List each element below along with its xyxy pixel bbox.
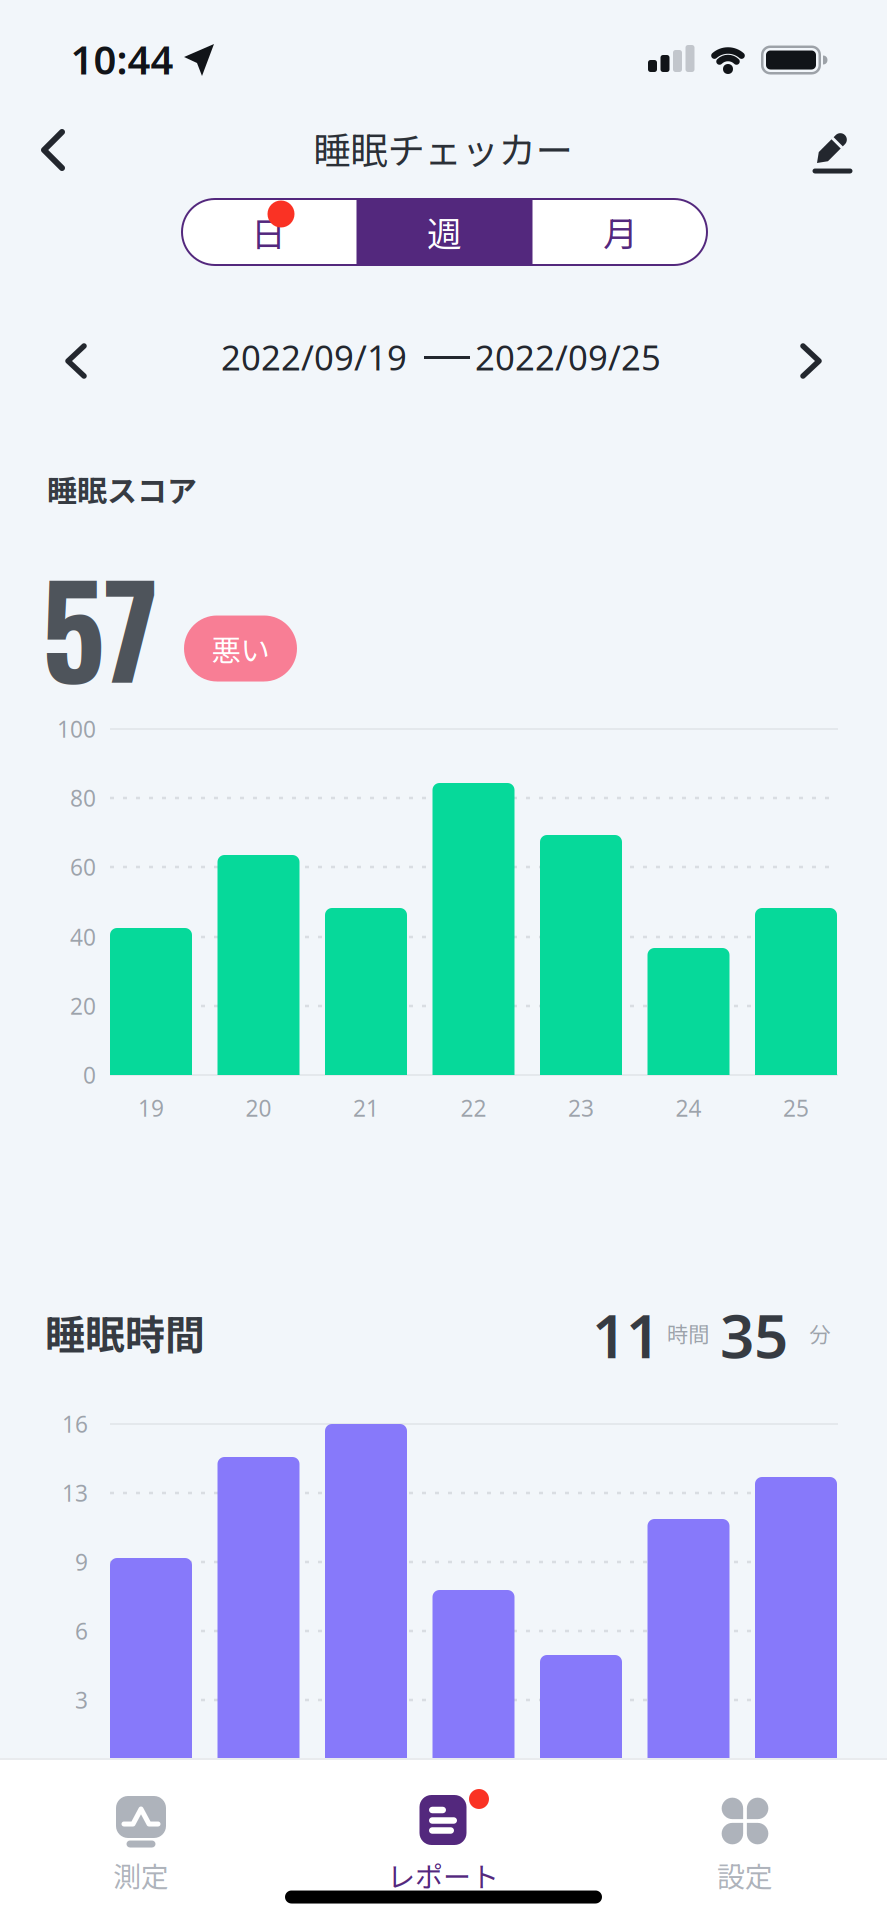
- button[interactable]: Back: [23, 120, 83, 180]
- staticText: 分: [809, 1318, 830, 1348]
- staticText: 60: [70, 852, 96, 882]
- staticText: 16: [62, 1409, 88, 1439]
- staticText: 23: [568, 1093, 594, 1123]
- staticText: 19: [138, 1093, 164, 1123]
- staticText: 80: [70, 783, 96, 813]
- staticText: 35: [720, 1295, 788, 1375]
- staticText: 11: [592, 1295, 660, 1375]
- staticText: 21: [353, 1093, 379, 1123]
- button[interactable]: Previous week: [48, 333, 104, 389]
- staticText: 時間: [667, 1318, 709, 1348]
- staticText: 悪い: [211, 627, 269, 670]
- staticText: 20: [245, 1093, 271, 1123]
- staticText: 睡眠チェッカー: [313, 121, 572, 175]
- staticText: 20: [70, 991, 96, 1021]
- button[interactable]: Next week: [783, 333, 839, 389]
- staticText: 日: [251, 207, 286, 257]
- staticText: 13: [62, 1478, 88, 1508]
- staticText: 睡眠時間: [45, 1303, 205, 1361]
- staticText: 22: [460, 1093, 486, 1123]
- staticText: 6: [75, 1616, 88, 1646]
- button[interactable]: レポート: [343, 1788, 543, 1908]
- button[interactable]: 月: [535, 198, 705, 266]
- button[interactable]: Edit: [800, 120, 864, 184]
- button[interactable]: 設定: [655, 1788, 835, 1908]
- staticText: 月: [603, 207, 638, 257]
- button[interactable]: 日: [183, 198, 353, 266]
- staticText: 3: [75, 1685, 88, 1715]
- staticText: 2022/09/19: [221, 334, 407, 380]
- staticText: 9: [75, 1547, 88, 1577]
- staticText: 睡眠スコア: [47, 467, 197, 511]
- staticText: 0: [83, 1060, 96, 1090]
- staticText: 25: [783, 1093, 809, 1123]
- staticText: 100: [57, 714, 96, 744]
- staticText: 40: [70, 922, 96, 952]
- staticText: レポート: [387, 1855, 499, 1895]
- staticText: 2022/09/25: [475, 334, 661, 380]
- staticText: 設定: [717, 1855, 773, 1895]
- button[interactable]: 測定: [51, 1788, 231, 1908]
- staticText: 測定: [113, 1855, 169, 1895]
- staticText: 10:44: [70, 32, 173, 85]
- button[interactable]: 週: [356, 198, 532, 266]
- staticText: 週: [427, 207, 462, 257]
- staticText: 24: [675, 1093, 701, 1123]
- staticText: 57: [41, 533, 158, 719]
